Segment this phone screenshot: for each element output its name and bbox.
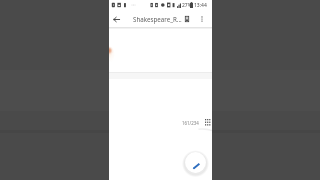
button[interactable]: Scroll handle <box>203 118 212 127</box>
staticText: Shakespeare_R... <box>133 15 182 23</box>
staticText: 27% <box>182 2 192 9</box>
button[interactable]: Edit <box>182 149 209 176</box>
button[interactable]: More options <box>196 13 208 25</box>
button[interactable]: Save <box>181 13 193 25</box>
button[interactable]: Back <box>110 13 122 25</box>
staticText: 13:44 <box>194 2 207 9</box>
staticText: 161/234 <box>182 120 199 126</box>
